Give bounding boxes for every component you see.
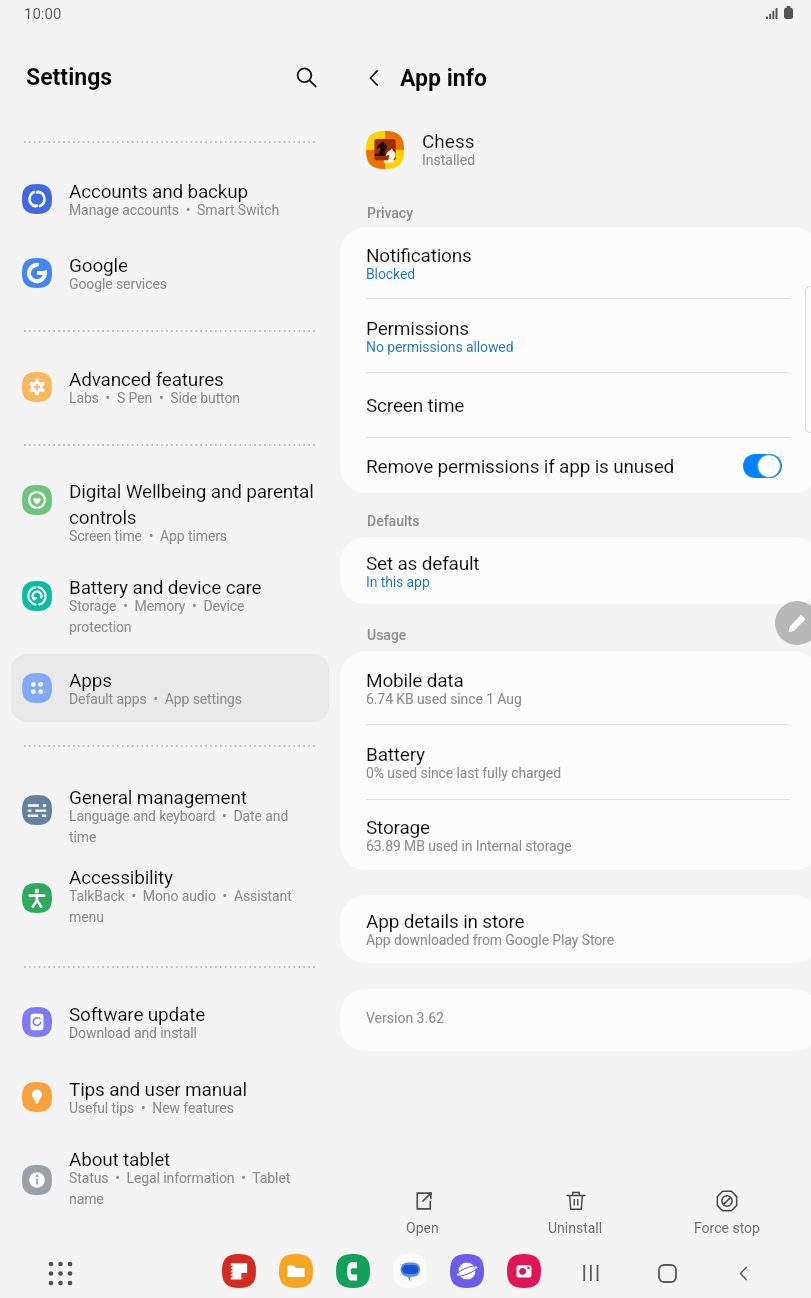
staticText: Settings — [26, 64, 113, 91]
staticText: Language and keyboard • Date and time — [69, 808, 289, 845]
staticText: Useful tips • New features — [69, 1100, 234, 1116]
staticText: Manage accounts • Smart Switch — [69, 202, 280, 218]
button[interactable] — [11, 238, 329, 308]
staticText: Download and install — [69, 1025, 197, 1041]
button[interactable] — [11, 553, 329, 639]
staticText: Force stop — [694, 1220, 760, 1236]
button[interactable]: Screen time — [340, 373, 811, 437]
staticText: TalkBack • Mono audio • Assistant menu — [69, 888, 292, 925]
button[interactable]: Phone — [336, 1254, 370, 1288]
button[interactable]: Open — [374, 1190, 470, 1244]
button[interactable]: Set as default — [340, 537, 811, 604]
staticText: Permissions — [366, 317, 469, 339]
staticText: Default apps • App settings — [69, 691, 242, 707]
staticText: Open — [406, 1220, 439, 1236]
staticText: Labs • S Pen • Side button — [69, 390, 240, 406]
button[interactable]: Back — [356, 60, 487, 96]
staticText: Installed — [422, 152, 476, 168]
button[interactable]: Internet — [450, 1254, 484, 1288]
staticText: Version 3.62 — [366, 1010, 444, 1026]
button[interactable]: Messages — [393, 1254, 427, 1288]
button[interactable] — [11, 1137, 329, 1223]
staticText: In this app — [366, 574, 430, 590]
staticText: Accessibility — [69, 866, 173, 888]
button[interactable]: Notes — [222, 1254, 256, 1288]
staticText: Notifications — [366, 244, 472, 266]
button[interactable]: Edit — [775, 601, 811, 645]
staticText: Usage — [367, 627, 407, 643]
staticText: Set as default — [366, 552, 480, 574]
button[interactable]: Camera — [507, 1254, 541, 1288]
staticText: Apps — [69, 669, 112, 691]
staticText: App downloaded from Google Play Store — [366, 932, 614, 948]
button[interactable] — [11, 987, 329, 1057]
staticText: 63.89 MB used in Internal storage — [366, 838, 572, 854]
staticText: App details in store — [366, 910, 525, 932]
staticText: Battery and device care — [69, 576, 262, 598]
staticText: Mobile data — [366, 669, 464, 691]
button[interactable]: Recents — [574, 1256, 608, 1290]
button[interactable]: All apps — [44, 1257, 76, 1289]
button[interactable]: Storage — [340, 800, 811, 870]
button[interactable] — [11, 855, 329, 941]
staticText: Accounts and backup — [69, 180, 249, 202]
staticText: Software update — [69, 1003, 206, 1025]
staticText: Status • Legal information • Tablet name — [69, 1170, 291, 1207]
staticText: 10:00 — [24, 5, 62, 23]
button[interactable]: Home — [650, 1256, 684, 1290]
button[interactable]: Uninstall — [527, 1190, 623, 1244]
staticText: Google services — [69, 276, 167, 292]
button[interactable]: Search — [286, 57, 326, 97]
staticText: App info — [400, 65, 487, 92]
button[interactable] — [11, 767, 329, 853]
button[interactable]: Remove permissions if app is unused — [340, 438, 811, 493]
button[interactable]: Notifications — [340, 227, 811, 298]
staticText: Digital Wellbeing and parental controls — [69, 480, 314, 528]
staticText: Battery — [366, 743, 425, 765]
staticText: No permissions allowed — [366, 339, 514, 355]
button[interactable]: App details in store — [340, 895, 811, 963]
button[interactable] — [11, 454, 329, 546]
button[interactable]: Back — [726, 1256, 760, 1290]
staticText: Privacy — [367, 205, 414, 221]
button[interactable] — [11, 164, 329, 234]
button[interactable] — [11, 352, 329, 422]
button[interactable]: Battery — [340, 725, 811, 799]
staticText: About tablet — [69, 1148, 171, 1170]
button[interactable]: Permissions — [340, 299, 811, 372]
staticText: Google — [69, 254, 128, 276]
staticText: Screen time • App timers — [69, 528, 227, 544]
staticText: 0% used since last fully charged — [366, 765, 561, 781]
staticText: Screen time — [366, 394, 465, 416]
button[interactable]: Force stop — [679, 1190, 775, 1244]
staticText: Tips and user manual — [69, 1078, 247, 1100]
staticText: Storage — [366, 816, 430, 838]
staticText: Chess — [422, 130, 475, 152]
button[interactable] — [11, 1062, 329, 1132]
staticText: Uninstall — [548, 1220, 603, 1236]
staticText: Defaults — [367, 513, 420, 529]
staticText: Storage • Memory • Device protection — [69, 598, 245, 635]
button[interactable] — [11, 654, 329, 722]
staticText: Advanced features — [69, 368, 224, 390]
staticText: Remove permissions if app is unused — [366, 455, 743, 477]
button[interactable]: Mobile data — [340, 651, 811, 724]
button[interactable]: Files — [279, 1254, 313, 1288]
staticText: 6.74 KB used since 1 Aug — [366, 691, 522, 707]
staticText: General management — [69, 786, 247, 808]
staticText: Blocked — [366, 266, 416, 282]
